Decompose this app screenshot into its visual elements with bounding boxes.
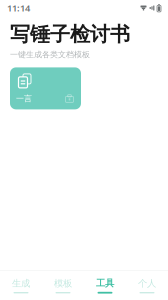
button[interactable]: 个人 bbox=[126, 271, 168, 300]
staticText: 一言 bbox=[16, 94, 32, 103]
staticText: 模板 bbox=[54, 278, 72, 289]
button[interactable]: 一言 bbox=[10, 67, 81, 109]
button[interactable]: 生成 bbox=[0, 271, 42, 300]
button[interactable]: 模板 bbox=[42, 271, 84, 300]
staticText: 生成 bbox=[12, 278, 30, 289]
button[interactable]: 工具 bbox=[84, 271, 126, 300]
staticText: 工具 bbox=[96, 277, 114, 289]
staticText: 个人 bbox=[138, 278, 156, 289]
staticText: 一键生成各类文档模板 bbox=[10, 50, 90, 59]
staticText: 11:14 bbox=[7, 2, 30, 14]
staticText: 写锤子检讨书 bbox=[10, 22, 130, 47]
